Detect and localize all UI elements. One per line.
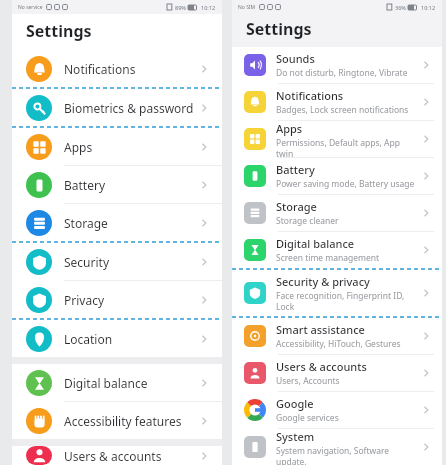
staticText: Digital balance <box>276 236 355 251</box>
button[interactable]: Storage <box>12 204 222 241</box>
staticText: Settings <box>246 18 312 40</box>
other: Open <box>418 131 434 147</box>
staticText: System <box>276 429 315 444</box>
staticText: Users & accounts <box>276 359 367 374</box>
other: Open <box>418 205 434 221</box>
button[interactable]: Smart assistance <box>232 318 442 354</box>
other: Open <box>196 292 212 308</box>
button[interactable]: Notifications <box>12 50 222 87</box>
staticText: Smart assistance <box>276 322 365 337</box>
other: Open <box>196 413 212 429</box>
staticText: 36% <box>395 4 406 11</box>
staticText: Privacy <box>64 292 196 308</box>
staticText: Users, Accounts <box>276 375 340 387</box>
button[interactable]: Biometrics & password <box>12 89 222 126</box>
button[interactable]: Location <box>12 320 222 357</box>
other: Open <box>196 100 212 116</box>
button[interactable]: Users & accounts <box>12 446 222 465</box>
other: Open <box>196 61 212 77</box>
button[interactable]: Digital balance <box>12 364 222 401</box>
other: Open <box>418 242 434 258</box>
other: Open <box>418 439 434 455</box>
button[interactable]: Battery <box>12 166 222 203</box>
other: Open <box>196 375 212 391</box>
staticText: Notifications <box>276 88 344 103</box>
staticText: Storage cleaner <box>276 215 339 227</box>
staticText: Notifications <box>64 61 196 77</box>
staticText: Google <box>276 396 314 411</box>
staticText: Accessibility features <box>64 413 196 429</box>
staticText: No SIM <box>238 4 256 11</box>
other: Open <box>196 331 212 347</box>
staticText: Digital balance <box>64 375 196 391</box>
button[interactable]: Digital balance <box>232 232 442 268</box>
button[interactable]: Notifications <box>232 84 442 120</box>
button[interactable]: Apps <box>12 128 222 165</box>
other: Open <box>418 365 434 381</box>
button[interactable]: Battery <box>232 158 442 194</box>
staticText: Settings <box>26 20 92 42</box>
staticText: Do not disturb, Ringtone, Vibrate <box>276 67 408 79</box>
button[interactable]: Security <box>12 243 222 280</box>
other: Open <box>196 254 212 270</box>
staticText: Users & accounts <box>64 448 196 464</box>
staticText: Battery <box>64 177 196 193</box>
staticText: Apps <box>64 139 196 155</box>
other: Open <box>418 168 434 184</box>
staticText: Power saving mode, Battery usage <box>276 178 415 190</box>
button[interactable]: Security & privacy <box>232 270 442 316</box>
staticText: Location <box>64 331 196 347</box>
staticText: Face recognition, Fingerprint ID, Lock s… <box>276 290 418 312</box>
other: Open <box>196 215 212 231</box>
other: Open <box>418 94 434 110</box>
staticText: Badges, Lock screen notifications <box>276 104 409 116</box>
staticText: No service <box>18 4 43 11</box>
button[interactable]: Apps <box>232 121 442 157</box>
other: Open <box>418 328 434 344</box>
staticText: Security <box>64 254 196 270</box>
other: Open <box>196 139 212 155</box>
button[interactable]: Privacy <box>12 281 222 318</box>
staticText: 10:12 <box>421 4 436 11</box>
button[interactable]: Sounds <box>232 47 442 83</box>
button[interactable]: Google <box>232 392 442 428</box>
staticText: Google services <box>276 412 339 424</box>
other: Open <box>418 285 434 301</box>
staticText: Biometrics & password <box>64 100 196 116</box>
other: Open <box>196 448 212 464</box>
staticText: 10:12 <box>201 4 216 11</box>
staticText: Security & privacy <box>276 274 370 289</box>
staticText: System navigation, Software update, Abou… <box>276 445 418 465</box>
staticText: Storage <box>276 199 317 214</box>
other: Open <box>418 402 434 418</box>
staticText: Storage <box>64 215 196 231</box>
staticText: 89% <box>175 4 186 11</box>
staticText: Permissions, Default apps, App twin <box>276 137 418 157</box>
staticText: Apps <box>276 121 303 136</box>
button[interactable]: Storage <box>232 195 442 231</box>
staticText: Sounds <box>276 51 315 66</box>
button[interactable]: Users & accounts <box>232 355 442 391</box>
button[interactable]: Accessibility features <box>12 402 222 439</box>
button[interactable]: System <box>232 429 442 465</box>
other: Open <box>196 177 212 193</box>
staticText: Battery <box>276 162 315 177</box>
other: Open <box>418 57 434 73</box>
staticText: Accessibility, HiTouch, Gestures <box>276 338 401 350</box>
staticText: Screen time management <box>276 252 380 264</box>
